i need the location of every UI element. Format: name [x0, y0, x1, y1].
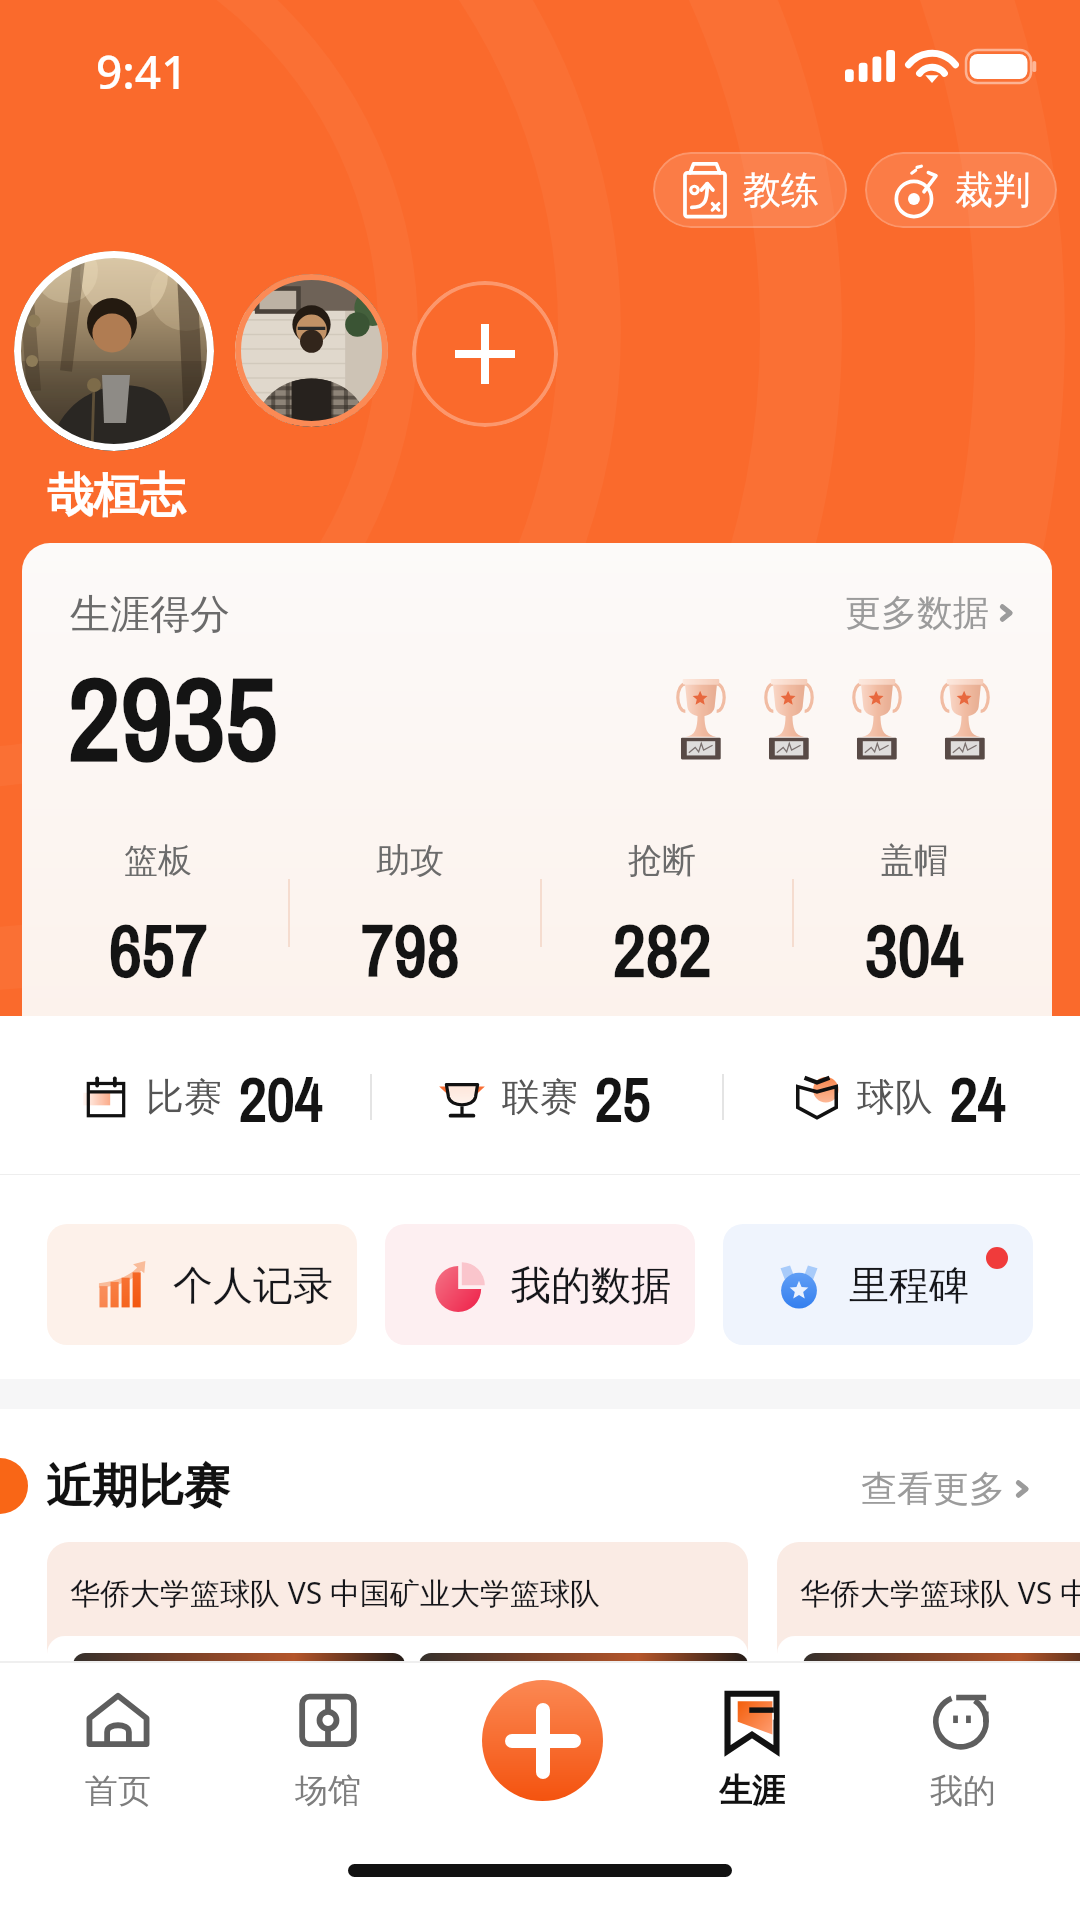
staticText: 盖帽 — [880, 839, 948, 882]
button[interactable]: Create — [482, 1680, 603, 1801]
button[interactable]: 华侨大学篮球队 VS 中国矿业大学篮球队 — [47, 1542, 748, 1792]
staticText: 华侨大学篮球队 VS 中国矿业大学篮球队 — [70, 1572, 601, 1613]
staticText: 798 — [361, 901, 460, 998]
staticText: 304 — [865, 901, 964, 998]
staticText: 联赛 — [502, 1073, 578, 1121]
staticText: 篮板 — [124, 839, 192, 882]
staticText: 25 — [595, 1058, 651, 1136]
staticText: 更多数据 — [845, 590, 989, 635]
button[interactable]: 生涯 — [647, 1682, 857, 1808]
staticText: 近期比赛 — [46, 1458, 230, 1516]
button[interactable]: 我的数据 — [385, 1224, 695, 1345]
button[interactable]: 查看更多 — [861, 1466, 1035, 1511]
staticText: 助攻 — [376, 839, 444, 882]
button[interactable]: 裁判 — [865, 152, 1057, 228]
staticText: 我的 — [930, 1770, 996, 1808]
staticText: 24 — [950, 1058, 1006, 1136]
staticText: 教练 — [743, 166, 819, 214]
staticText: 场馆 — [295, 1770, 361, 1808]
button[interactable]: Add member — [412, 281, 558, 427]
button[interactable]: 个人记录 — [47, 1224, 357, 1345]
staticText: 204 — [239, 1058, 323, 1136]
staticText: 抢断 — [628, 839, 696, 882]
button[interactable]: 我的 — [858, 1682, 1068, 1808]
staticText: 首页 — [85, 1770, 151, 1808]
button[interactable]: 比赛 — [80, 1058, 323, 1136]
staticText: 我的数据 — [511, 1260, 671, 1310]
button[interactable]: 更多数据 — [845, 590, 1019, 635]
staticText: 9:41 — [96, 40, 188, 103]
button[interactable]: 华侨大学篮球队 VS 中国矿业大学篮球队 — [777, 1542, 1080, 1792]
button[interactable]: Team member photo — [235, 274, 388, 427]
button[interactable]: 场馆 — [223, 1682, 433, 1808]
staticText: 生涯得分 — [70, 589, 230, 639]
staticText: 比赛 — [146, 1073, 222, 1121]
staticText: 哉桓志 — [47, 467, 185, 525]
button[interactable]: 首页 — [13, 1682, 223, 1808]
button[interactable]: 联赛 — [436, 1058, 651, 1136]
staticText: 裁判 — [955, 166, 1031, 214]
staticText: 查看更多 — [861, 1466, 1005, 1511]
button[interactable]: 里程碑 — [723, 1224, 1033, 1345]
button[interactable]: 生涯得分 — [22, 543, 1052, 1016]
staticText: 生涯 — [719, 1770, 785, 1808]
staticText: 282 — [613, 901, 712, 998]
staticText: 华侨大学篮球队 VS 中国矿业大学篮球队 — [800, 1572, 1080, 1613]
staticText: 球队 — [857, 1073, 933, 1121]
staticText: 里程碑 — [849, 1260, 969, 1310]
staticText: 个人记录 — [173, 1260, 333, 1310]
button[interactable]: 球队 — [791, 1058, 1006, 1136]
staticText: 657 — [109, 901, 208, 998]
button[interactable]: 教练 — [653, 152, 847, 228]
button[interactable]: Profile photo — [14, 251, 214, 451]
staticText: 2935 — [68, 641, 278, 796]
